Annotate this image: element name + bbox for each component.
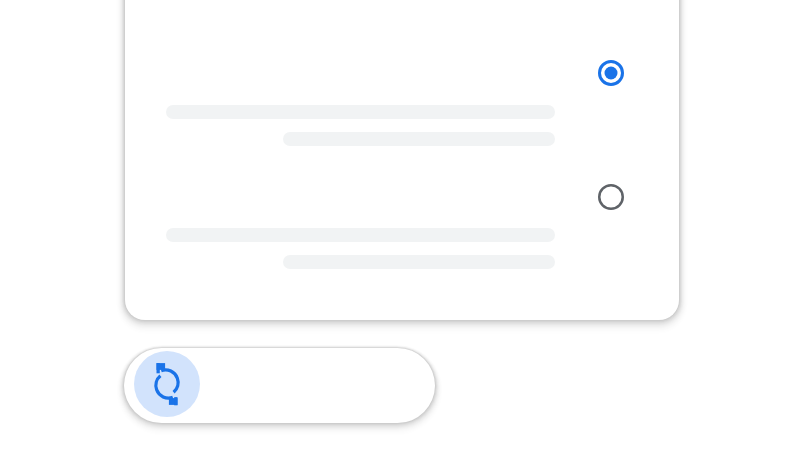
button[interactable]: Sync row — [124, 348, 435, 423]
button[interactable]: Option two — [125, 160, 679, 320]
button[interactable]: Option one, selected — [125, 0, 679, 160]
button[interactable]: Sync — [134, 351, 200, 417]
